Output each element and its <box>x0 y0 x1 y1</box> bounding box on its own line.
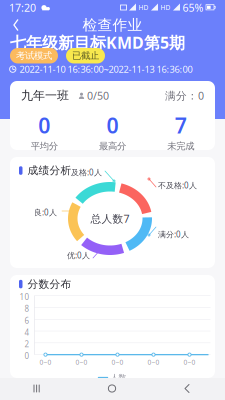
staticText: 人数 <box>110 373 126 382</box>
staticText: 优:0人 <box>67 250 90 261</box>
staticText: 0 <box>38 111 50 139</box>
staticText: 2 <box>24 339 29 349</box>
staticText: 0~0 <box>147 358 159 366</box>
staticText: 0 <box>106 111 118 139</box>
staticText: 0~0 <box>183 358 195 366</box>
staticText: 检查作业 <box>82 16 142 34</box>
staticText: 满分:0人 <box>158 229 189 240</box>
staticText: 成绩分析 <box>27 164 71 177</box>
staticText: HD <box>138 3 148 12</box>
staticText: 0 <box>24 351 29 361</box>
staticText: 4 <box>24 327 29 338</box>
staticText: 九年一班 <box>21 88 69 103</box>
staticText: 不及格:0人 <box>158 180 197 191</box>
staticText: 考试模式 <box>16 50 52 61</box>
staticText: 8 <box>24 303 29 314</box>
staticText: 17:20 <box>9 0 36 15</box>
staticText: 良:0人 <box>34 207 57 218</box>
staticText: 分数分布 <box>27 277 71 291</box>
staticText: 7 <box>175 111 187 139</box>
button[interactable]: Back <box>150 384 225 393</box>
staticText: 10 <box>19 292 29 302</box>
staticText: HD <box>160 3 170 12</box>
staticText: 0~0 <box>111 358 123 366</box>
staticText: 0/50 <box>87 88 109 103</box>
staticText: 总人数7 <box>90 211 129 226</box>
button[interactable]: Home <box>75 384 150 393</box>
staticText: 65% <box>182 0 203 15</box>
button[interactable]: Recents <box>0 385 75 393</box>
staticText: 6 <box>24 315 29 326</box>
staticText: 2022-11-10 16:36:00~2022-11-13 16:36:00 <box>19 63 192 75</box>
staticText: 满分：0 <box>165 88 204 103</box>
staticText: 及格:0人 <box>71 167 102 178</box>
staticText: 七年级新目标KMD第5期 <box>10 32 185 53</box>
button[interactable]: Back <box>5 15 27 35</box>
staticText: 平均分 <box>31 140 58 152</box>
staticText: 未完成 <box>167 140 194 152</box>
staticText: 0~0 <box>39 358 51 366</box>
staticText: 已截止 <box>72 50 99 61</box>
staticText: 最高分 <box>99 140 126 152</box>
staticText: 0~0 <box>75 358 87 366</box>
